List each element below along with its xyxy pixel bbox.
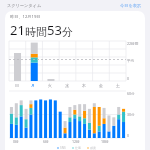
staticText: 日 <box>15 83 19 88</box>
staticText: 月 <box>31 83 35 88</box>
staticText: 53 <box>47 21 62 39</box>
staticText: 今日を表示 <box>120 3 142 8</box>
staticText: 水 <box>65 83 69 88</box>
staticText: 0 <box>127 133 130 138</box>
staticText: 仕事 <box>75 146 81 150</box>
staticText: 金 <box>99 83 103 88</box>
staticText: 平均 <box>127 59 135 64</box>
staticText: SNS <box>60 146 66 150</box>
staticText: 30分 <box>127 112 135 117</box>
staticText: 0 <box>127 76 130 81</box>
staticText: 娯楽 <box>90 146 96 150</box>
staticText: 12時 <box>72 139 80 144</box>
staticText: 18時 <box>101 139 109 144</box>
button[interactable]: 仕事 <box>72 146 81 150</box>
staticText: 昨日、12月19日 <box>10 14 41 20</box>
staticText: 木 <box>82 83 86 88</box>
button[interactable]: 娯楽 <box>87 146 96 150</box>
staticText: スクリーンタイム <box>7 3 42 8</box>
button[interactable]: SNS <box>57 146 66 150</box>
staticText: 21 <box>10 21 25 39</box>
button[interactable]: 昨日、12月19日 <box>5 11 145 150</box>
staticText: 22時間 <box>127 41 139 46</box>
staticText: 6時 <box>43 139 49 144</box>
staticText: 0時 <box>13 139 19 144</box>
button[interactable]: 今日を表示 <box>119 2 143 9</box>
staticText: 分 <box>62 25 73 39</box>
staticText: 時間 <box>25 25 47 39</box>
staticText: 火 <box>48 83 52 88</box>
staticText: 土 <box>116 83 120 88</box>
staticText: 60分 <box>127 91 135 96</box>
